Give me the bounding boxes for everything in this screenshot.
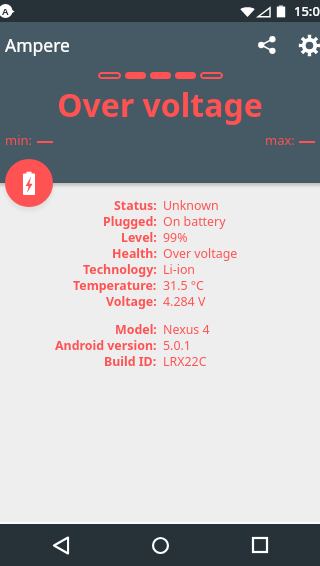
staticText: Health: xyxy=(112,245,157,261)
staticText: 99% xyxy=(163,229,188,245)
staticText: Plugged: xyxy=(103,213,157,229)
staticText: Ampere xyxy=(5,33,70,57)
button[interactable]: Home xyxy=(136,524,184,566)
staticText: 31.5 °C xyxy=(163,277,204,293)
staticText: Nexus 4 xyxy=(163,321,210,337)
staticText: Li-ion xyxy=(163,261,196,277)
button[interactable]: Share xyxy=(253,31,281,59)
button[interactable]: Recents xyxy=(236,524,284,566)
staticText: A xyxy=(2,5,9,18)
staticText: Build ID: xyxy=(104,353,157,369)
staticText: Unknown xyxy=(163,197,219,213)
staticText: max: xyxy=(265,131,295,149)
staticText: 5.0.1 xyxy=(163,337,191,353)
staticText: Android version: xyxy=(55,337,157,353)
button[interactable]: Back xyxy=(37,524,85,566)
staticText: Model: xyxy=(115,321,157,337)
button[interactable]: Measure charging xyxy=(5,159,53,207)
staticText: Over voltage xyxy=(163,245,238,261)
staticText: On battery xyxy=(163,213,226,229)
staticText: min: xyxy=(5,131,33,149)
staticText: Voltage: xyxy=(106,293,157,309)
staticText: 15:01 xyxy=(294,2,320,20)
button[interactable]: Settings xyxy=(295,31,320,59)
staticText: Status: xyxy=(114,197,157,213)
staticText: LRX22C xyxy=(163,353,207,369)
staticText: Level: xyxy=(121,229,157,245)
staticText: 4.284 V xyxy=(163,293,206,309)
staticText: Over voltage xyxy=(0,83,320,127)
staticText: Temperature: xyxy=(73,277,157,293)
staticText: Technology: xyxy=(83,261,157,277)
